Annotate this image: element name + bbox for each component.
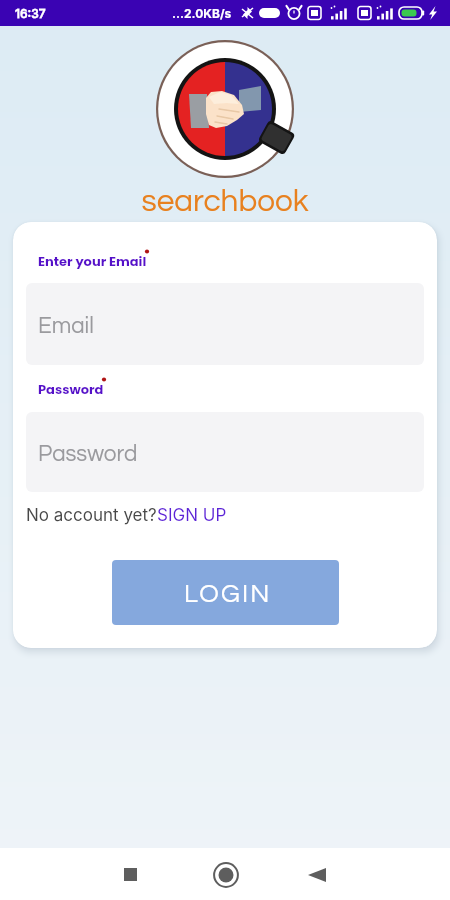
staticText: SIGN UP [157,505,227,526]
staticText: Enter your Email [38,252,147,270]
staticText: Email [38,315,94,338]
button[interactable]: LOGIN [112,560,339,625]
staticText: 16:37 [15,6,46,21]
staticText: searchbook [0,185,450,217]
staticText: Password [38,443,138,466]
button[interactable]: Back [292,850,341,899]
staticText: Password [38,380,104,398]
button[interactable]: Home [201,850,250,899]
button[interactable]: Email [26,283,424,365]
button[interactable]: Recent apps [106,850,155,899]
staticText: LOGIN [184,581,272,608]
staticText: No account yet? [26,505,157,526]
staticText: ...2.0KB/s [172,6,232,21]
button[interactable]: SIGN UP [157,505,227,526]
button[interactable]: Password [26,412,424,492]
